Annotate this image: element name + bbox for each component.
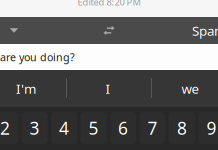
- staticText: Spanish: [192, 22, 218, 39]
- button[interactable]: I: [66, 70, 150, 107]
- button[interactable]: 3: [22, 112, 48, 144]
- staticText: 2: [0, 116, 10, 139]
- button[interactable]: Swap languages: [96, 17, 122, 44]
- button[interactable]: Source language: [0, 17, 29, 44]
- button[interactable]: I'm: [0, 70, 52, 107]
- button[interactable]: 7: [140, 112, 166, 144]
- staticText: Edited 8:20 PM: [77, 0, 140, 8]
- staticText: 4: [59, 116, 69, 139]
- staticText: 8: [177, 116, 187, 139]
- staticText: 7: [148, 116, 158, 139]
- button[interactable]: 9: [199, 112, 218, 144]
- staticText: 3: [30, 116, 40, 139]
- button[interactable]: Spanish: [192, 17, 218, 44]
- staticText: are you doing?: [0, 50, 75, 64]
- staticText: we: [181, 80, 199, 97]
- button[interactable]: we: [151, 70, 218, 107]
- staticText: 5: [89, 116, 99, 139]
- button[interactable]: 5: [81, 112, 107, 144]
- staticText: 9: [207, 116, 217, 139]
- button[interactable]: 2: [0, 112, 18, 144]
- staticText: 6: [118, 116, 128, 139]
- staticText: I'm: [16, 80, 36, 97]
- button[interactable]: 6: [110, 112, 136, 144]
- staticText: I: [105, 80, 110, 97]
- button[interactable]: 4: [51, 112, 77, 144]
- button[interactable]: 8: [169, 112, 195, 144]
